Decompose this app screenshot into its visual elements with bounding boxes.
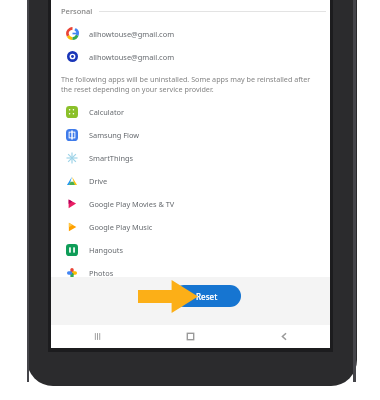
staticText: Google Play Movies & TV xyxy=(89,199,175,209)
staticText: SmartThings xyxy=(89,153,134,163)
staticText: Calculator xyxy=(89,107,125,117)
button[interactable]: SmartThings xyxy=(51,146,330,169)
button[interactable]: Back xyxy=(237,325,330,348)
button[interactable]: Photos xyxy=(51,261,330,284)
staticText: Reset xyxy=(196,291,218,302)
staticText: Hangouts xyxy=(89,245,123,255)
button[interactable]: Samsung Flow xyxy=(51,123,330,146)
button[interactable]: Drive xyxy=(51,169,330,192)
button[interactable]: Recents xyxy=(51,325,144,348)
staticText: allhowtouse@gmail.com xyxy=(89,52,175,62)
staticText: Samsung Flow xyxy=(89,130,140,140)
staticText: Drive xyxy=(89,176,108,186)
button[interactable]: Hangouts xyxy=(51,238,330,261)
button[interactable]: allhowtouse@gmail.com xyxy=(51,22,330,45)
staticText: allhowtouse@gmail.com xyxy=(89,29,175,39)
button[interactable]: Home xyxy=(144,325,237,348)
button[interactable]: Google Play Music xyxy=(51,215,330,238)
button[interactable]: allhowtouse@gmail.com xyxy=(51,45,330,68)
staticText: Photos xyxy=(89,268,114,278)
button[interactable]: Reset xyxy=(173,285,241,307)
button[interactable]: Google Play Movies & TV xyxy=(51,192,330,215)
button[interactable]: Calculator xyxy=(51,100,330,123)
staticText: The following apps will be uninstalled. … xyxy=(61,74,316,94)
staticText: Personal xyxy=(61,6,93,16)
staticText: Google Play Music xyxy=(89,222,153,232)
